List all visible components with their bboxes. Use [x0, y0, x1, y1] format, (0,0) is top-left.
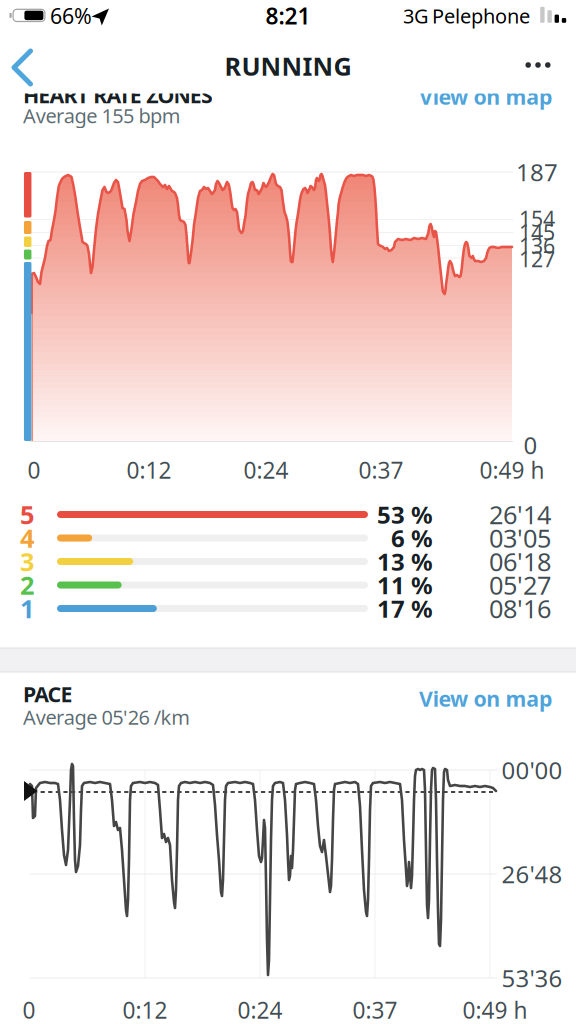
- staticText: 03'05: [489, 521, 551, 555]
- staticText: 53 %: [377, 499, 433, 530]
- staticText: 66%: [50, 2, 92, 30]
- button[interactable]: More: [516, 45, 560, 85]
- staticText: 08'16: [489, 592, 551, 625]
- staticText: Pelephone: [432, 2, 530, 29]
- staticText: 3G: [403, 2, 429, 29]
- staticText: 0:24: [243, 455, 288, 485]
- staticText: HEART RATE ZONES: [23, 81, 213, 109]
- staticText: View on map: [419, 684, 552, 713]
- staticText: 6 %: [391, 522, 433, 554]
- staticText: 0: [22, 995, 35, 1024]
- staticText: 0:37: [352, 995, 397, 1024]
- staticText: 145: [519, 218, 555, 246]
- staticText: 127: [519, 245, 555, 273]
- staticText: 2: [20, 568, 34, 602]
- staticText: View on map: [419, 82, 552, 111]
- staticText: 5: [20, 498, 34, 531]
- staticText: 8:21: [265, 1, 310, 31]
- staticText: 00'00: [501, 754, 562, 786]
- staticText: 0:24: [237, 995, 282, 1024]
- staticText: 0:49 h: [479, 455, 544, 485]
- staticText: 0:37: [358, 455, 403, 485]
- staticText: 06'18: [489, 545, 551, 578]
- staticText: RUNNING: [224, 49, 351, 83]
- staticText: 1: [20, 592, 34, 625]
- staticText: 11 %: [377, 569, 433, 601]
- staticText: 0:12: [122, 995, 167, 1024]
- staticText: 0:12: [126, 455, 171, 485]
- staticText: 26'14: [489, 498, 551, 531]
- button[interactable]: Back: [4, 42, 48, 92]
- staticText: 4: [20, 521, 34, 555]
- staticText: Average 155 bpm: [23, 102, 181, 129]
- staticText: 0:49 h: [462, 995, 527, 1024]
- staticText: 187: [516, 156, 558, 188]
- button[interactable]: View on map: [382, 682, 552, 714]
- staticText: 154: [519, 204, 555, 233]
- staticText: 136: [519, 231, 555, 260]
- staticText: 0: [27, 455, 40, 485]
- staticText: 05'27: [489, 568, 551, 602]
- staticText: 17 %: [377, 593, 433, 624]
- staticText: 0: [523, 429, 537, 461]
- staticText: PACE: [23, 680, 73, 708]
- staticText: 13 %: [377, 546, 433, 577]
- staticText: 26'48: [501, 858, 562, 890]
- staticText: 53'36: [501, 962, 562, 994]
- button[interactable]: View on map: [382, 80, 552, 112]
- staticText: Average 05'26 /km: [23, 704, 190, 730]
- staticText: 3: [20, 545, 34, 578]
